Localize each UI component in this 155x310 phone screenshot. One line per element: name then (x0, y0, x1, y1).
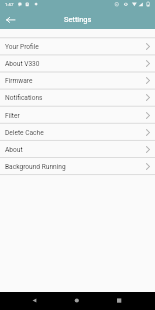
staticText: Notifications (5, 94, 43, 102)
staticText: About V330 (5, 60, 40, 68)
staticText: 1:57 (5, 2, 14, 7)
staticText: About (5, 146, 23, 154)
staticText: Delete Cache (5, 129, 44, 137)
staticText: Firmware (5, 77, 33, 85)
button[interactable]: Back (0, 11, 18, 29)
button[interactable]: Home (69, 293, 86, 310)
button[interactable]: Notifications (0, 89, 155, 105)
button[interactable]: Your Profile (0, 38, 155, 54)
button[interactable]: Back (26, 293, 43, 310)
button[interactable]: About V330 (0, 55, 155, 71)
staticText: Filter (5, 112, 20, 120)
staticText: Background Running (5, 163, 66, 171)
staticText: Settings (64, 15, 92, 24)
button[interactable]: Background Running (0, 158, 155, 174)
staticText: Your Profile (5, 43, 39, 51)
button[interactable]: Firmware (0, 72, 155, 88)
button[interactable]: Recent apps (111, 293, 128, 310)
button[interactable]: About (0, 141, 155, 157)
button[interactable]: Delete Cache (0, 124, 155, 140)
button[interactable]: Filter (0, 107, 155, 123)
